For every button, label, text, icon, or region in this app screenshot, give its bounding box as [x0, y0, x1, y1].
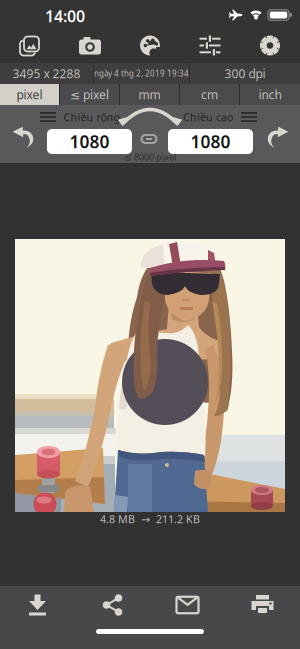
- staticText: 1080: [190, 130, 230, 153]
- staticText: inch: [258, 86, 281, 102]
- staticText: ngày 4 thg 2, 2019 19:34: [94, 68, 189, 79]
- staticText: 14:00: [45, 5, 85, 27]
- button[interactable]: Save: [0, 594, 75, 615]
- button[interactable]: Settings: [240, 35, 300, 55]
- button[interactable]: Email: [150, 596, 225, 613]
- staticText: Chiều cao: [183, 110, 233, 124]
- button[interactable]: ≤ pixel: [60, 84, 119, 105]
- button[interactable]: Camera: [60, 36, 120, 54]
- staticText: cm: [201, 86, 218, 102]
- button[interactable]: Height: [168, 129, 253, 154]
- button[interactable]: Print: [225, 595, 300, 615]
- button[interactable]: Adjustments: [180, 35, 240, 55]
- button[interactable]: Lock aspect ratio: [140, 134, 157, 144]
- staticText: 4.8 MB → 211.2 KB: [100, 512, 200, 526]
- staticText: 300 dpi: [224, 65, 265, 81]
- button[interactable]: pixel: [0, 84, 59, 105]
- button[interactable]: mm: [120, 84, 179, 105]
- staticText: ≤ pixel: [70, 86, 109, 102]
- staticText: mm: [138, 86, 160, 102]
- staticText: ≤ 8000 pixel: [124, 151, 176, 163]
- button[interactable]: Edit: [120, 35, 180, 55]
- button[interactable]: Undo: [13, 126, 35, 148]
- staticText: Chiều rộng: [63, 110, 120, 124]
- staticText: 1080: [69, 130, 109, 153]
- staticText: pixel: [16, 86, 42, 102]
- staticText: 3495 x 2288: [12, 65, 80, 81]
- button[interactable]: cm: [180, 84, 239, 105]
- button[interactable]: inch: [240, 84, 300, 105]
- button[interactable]: Width: [47, 129, 132, 154]
- button[interactable]: Redo: [266, 126, 288, 148]
- button[interactable]: Photo Library: [0, 34, 60, 56]
- button[interactable]: Share: [75, 594, 150, 615]
